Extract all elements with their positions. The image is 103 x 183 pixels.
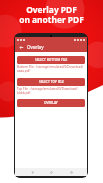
staticText: Bottom File : /storage/emulated/0/Downlo… xyxy=(17,65,85,73)
button[interactable]: Back xyxy=(18,44,24,50)
button[interactable]: OVERLAY xyxy=(17,99,85,107)
staticText: OVERLAY xyxy=(44,101,58,105)
button[interactable]: Home xyxy=(48,169,54,175)
button[interactable]: Back xyxy=(29,169,35,175)
staticText: Overlay PDF on another PDF xyxy=(19,4,84,25)
staticText: SELECT TOP FILE xyxy=(39,80,64,84)
button[interactable]: Recents xyxy=(68,169,74,175)
button[interactable]: SELECT BOTTOM FILE xyxy=(17,56,85,64)
staticText: Overlay xyxy=(27,44,44,50)
staticText: Top File : /storage/emulated/0/Download/… xyxy=(17,87,85,95)
staticText: SELECT BOTTOM FILE xyxy=(35,58,68,62)
button[interactable]: SELECT TOP FILE xyxy=(17,78,85,86)
